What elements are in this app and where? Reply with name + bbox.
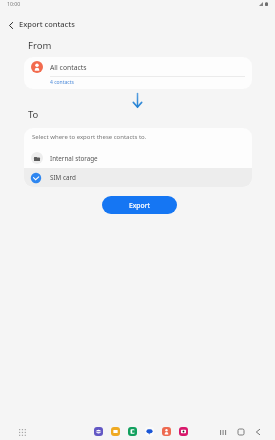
button[interactable]: Export [102, 196, 177, 214]
button[interactable]: Back [252, 426, 264, 438]
button[interactable]: App [94, 427, 103, 436]
button[interactable]: App [145, 427, 154, 436]
button[interactable]: App [111, 427, 120, 436]
button[interactable]: Back [2, 16, 20, 34]
staticText: From [28, 39, 52, 52]
staticText: Internal storage [50, 154, 98, 163]
button[interactable]: App [128, 427, 137, 436]
button[interactable]: Home [235, 426, 247, 438]
staticText: Export [129, 201, 150, 210]
staticText: Select where to export these contacts to… [32, 133, 147, 141]
button[interactable]: SIM card [24, 168, 252, 187]
button[interactable]: 4 contacts [24, 77, 252, 89]
staticText: 10:00 [7, 0, 21, 7]
staticText: SIM card [50, 173, 76, 182]
button[interactable]: App [162, 427, 171, 436]
staticText: 4 contacts [50, 79, 74, 86]
button[interactable]: Internal storage [24, 148, 252, 168]
staticText: All contacts [50, 63, 87, 72]
staticText: To [28, 108, 39, 121]
button[interactable]: App [179, 427, 188, 436]
staticText: Export contacts [19, 19, 75, 29]
button[interactable]: Apps [16, 426, 28, 438]
button[interactable]: All contacts [24, 57, 252, 77]
button[interactable]: Recents [217, 426, 229, 438]
